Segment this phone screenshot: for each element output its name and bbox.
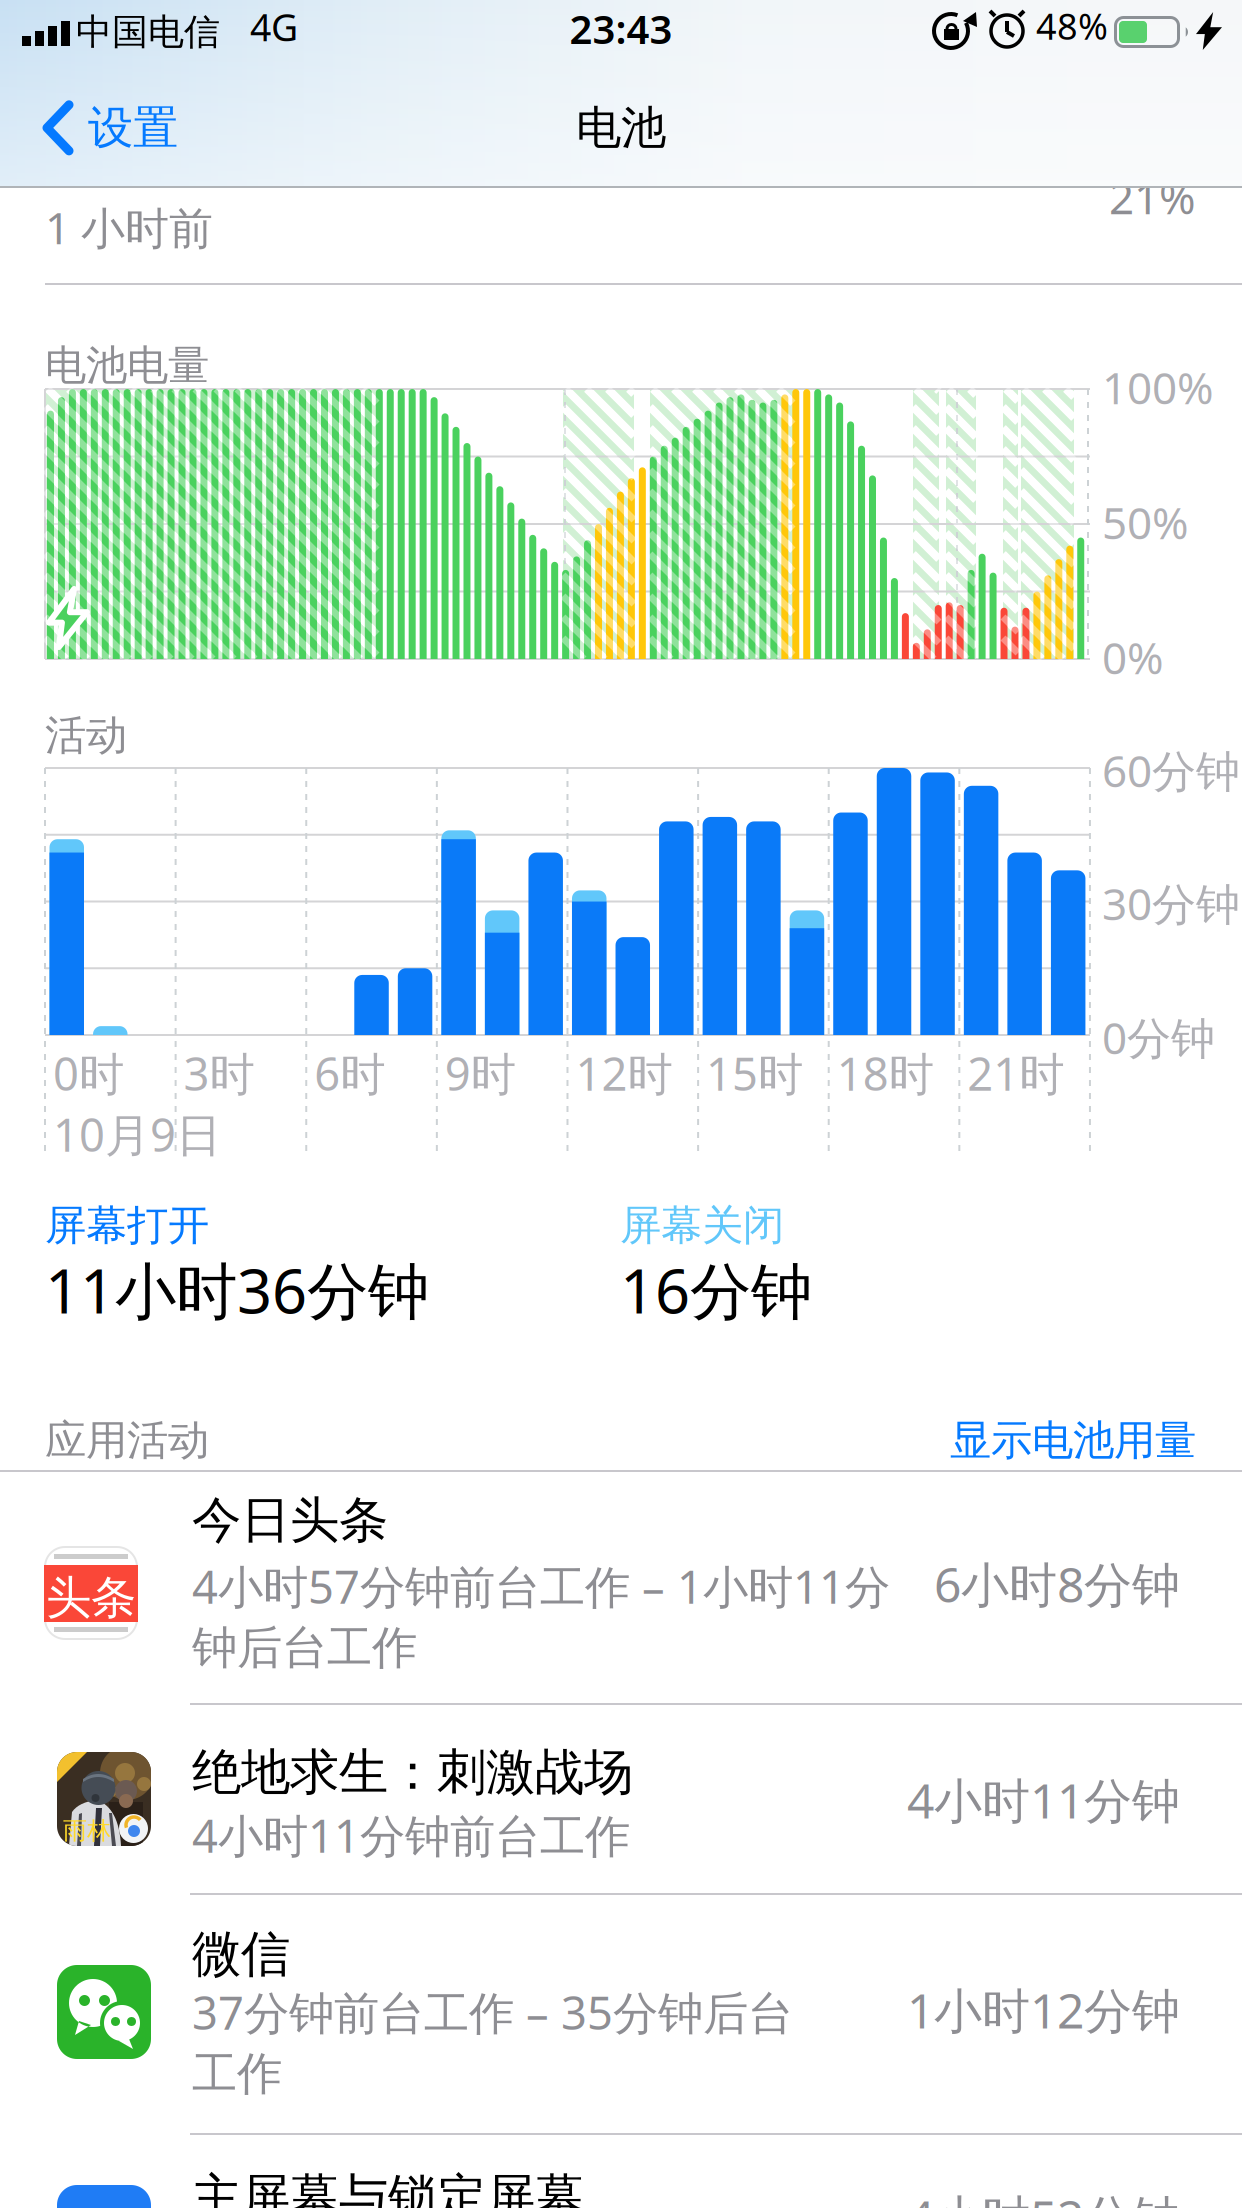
- staticText: 显示电池用量: [950, 1415, 1196, 1466]
- staticText: 0时: [53, 1043, 124, 1103]
- staticText: 0%: [1102, 628, 1164, 686]
- staticText: 屏幕关闭: [620, 1200, 784, 1251]
- staticText: 23:43: [569, 2, 672, 55]
- staticText: 100%: [1102, 358, 1214, 416]
- staticText: 21%: [1109, 168, 1196, 226]
- button[interactable]: 微信: [0, 1895, 1242, 2135]
- staticText: 4小时11分钟: [907, 1768, 1180, 1832]
- staticText: 50%: [1102, 493, 1189, 551]
- staticText: 11小时36分钟: [45, 1249, 429, 1330]
- button[interactable]: 返回设置: [42, 100, 178, 156]
- staticText: 主屏幕与锁定屏幕: [192, 2167, 584, 2208]
- staticText: 10月9日: [53, 1104, 221, 1164]
- staticText: 1 小时前: [45, 198, 213, 256]
- staticText: 1小时12分钟: [907, 1978, 1180, 2042]
- staticText: 6时: [314, 1043, 385, 1103]
- staticText: 9时: [445, 1043, 516, 1103]
- button[interactable]: 主屏幕与锁定屏幕: [0, 2135, 1242, 2208]
- staticText: 4小时52分钟: [907, 2185, 1180, 2208]
- staticText: 30分钟: [1102, 874, 1240, 932]
- staticText: 37分钟前台工作 – 35分钟后台: [192, 1982, 793, 2042]
- staticText: 12时: [575, 1043, 672, 1103]
- staticText: 60分钟: [1102, 741, 1240, 799]
- staticText: 今日头条: [192, 1490, 388, 1551]
- staticText: 工作: [192, 2046, 282, 2102]
- staticText: 4G: [250, 2, 298, 52]
- staticText: 4小时11分钟前台工作: [192, 1805, 630, 1865]
- staticText: 头条: [46, 1570, 136, 1626]
- staticText: 电池: [576, 100, 666, 156]
- staticText: 48%: [1036, 2, 1108, 50]
- staticText: 电池电量: [45, 340, 209, 391]
- button[interactable]: 头条: [0, 1471, 1242, 1705]
- staticText: 15时: [706, 1043, 803, 1103]
- button[interactable]: 雨林: [0, 1705, 1242, 1895]
- staticText: 应用活动: [45, 1415, 209, 1466]
- staticText: 活动: [45, 710, 127, 761]
- staticText: 16分钟: [620, 1249, 812, 1330]
- staticText: 绝地求生：刺激战场: [192, 1742, 633, 1803]
- staticText: 中国电信: [76, 10, 220, 54]
- staticText: 3时: [184, 1043, 255, 1103]
- staticText: 钟后台工作: [192, 1620, 417, 1676]
- staticText: 0分钟: [1102, 1008, 1215, 1066]
- staticText: 18时: [837, 1043, 934, 1103]
- staticText: 21时: [967, 1043, 1064, 1103]
- staticText: 设置: [88, 100, 178, 156]
- staticText: 4小时57分钟前台工作 – 1小时11分: [192, 1556, 890, 1616]
- staticText: 6小时8分钟: [934, 1552, 1180, 1616]
- staticText: 雨林: [63, 1816, 111, 1845]
- staticText: 屏幕打开: [45, 1200, 209, 1251]
- staticText: 微信: [192, 1924, 290, 1985]
- button[interactable]: 显示电池用量: [796, 1415, 1196, 1466]
